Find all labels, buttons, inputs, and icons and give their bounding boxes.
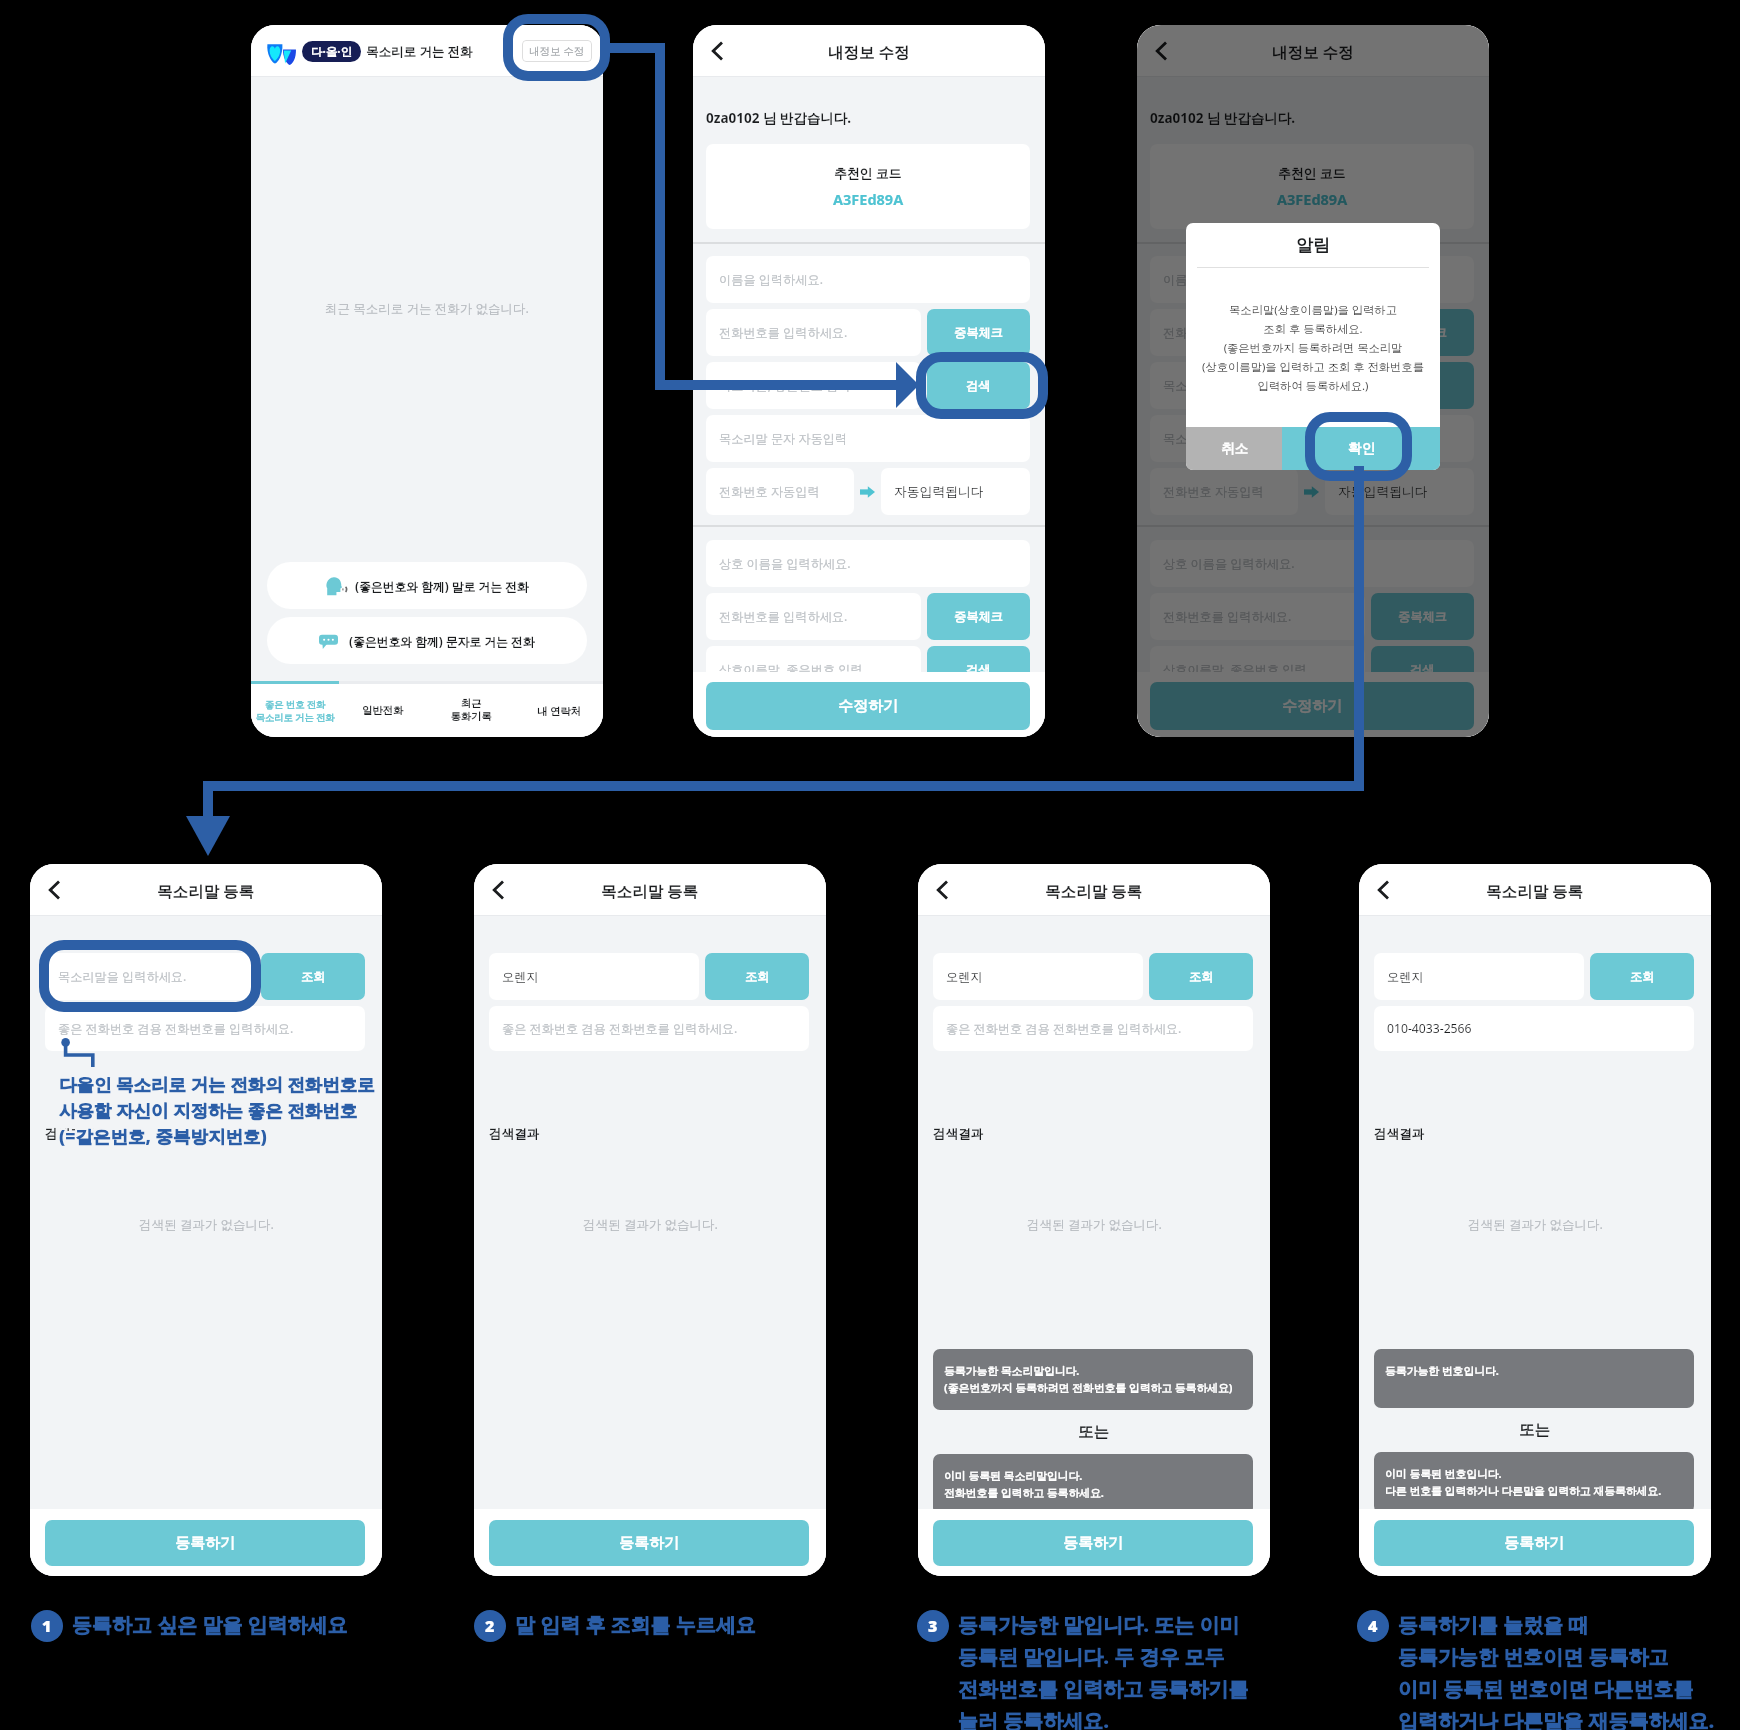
button[interactable]: 등록하기 — [489, 1520, 809, 1566]
button[interactable]: 내 연락처 — [515, 684, 603, 737]
staticText: 말 입력 후 조회를 누르세요 — [515, 1611, 756, 1638]
button[interactable]: 중복체크 — [1371, 309, 1474, 356]
button[interactable]: 2 — [474, 1610, 506, 1642]
staticText: 다·올·인 — [311, 44, 352, 60]
button[interactable]: 수정하기 — [1150, 682, 1474, 730]
button[interactable]: 3 — [917, 1610, 949, 1642]
staticText: 오렌지 — [1387, 969, 1424, 984]
staticText: 목소리말 문자 자동입력 — [719, 430, 848, 447]
button[interactable]: 중복체크 — [927, 593, 1030, 640]
button[interactable]: 조회 — [1149, 953, 1253, 1000]
button[interactable]: Back — [1367, 873, 1401, 907]
staticText: 다올인 목소리로 거는 전화의 전화번호로 사용할 자신이 지정하는 좋은 전화… — [57, 1073, 397, 1149]
button[interactable]: 오렌지 — [933, 953, 1143, 1000]
button[interactable]: 목소리말을 입력하세요. — [45, 953, 255, 1000]
staticText: 조회 — [1189, 969, 1214, 984]
button[interactable]: 상호 이름을 입력하세요. — [706, 540, 1030, 587]
button[interactable]: (좋은번호와 함께) 문자로 거는 전화 — [267, 617, 587, 664]
staticText: 알림 — [1296, 235, 1330, 256]
button[interactable]: 좋은 전화번호 겸용 전화번호를 입력하세요. — [45, 1006, 365, 1051]
button[interactable]: 확인 — [1282, 427, 1440, 470]
button[interactable]: 등록하기 — [45, 1520, 365, 1566]
staticText: 이미 등록된 번호입니다. 다른 번호를 입력하거나 다른말을 입력하고 재등록… — [1385, 1466, 1662, 1499]
button[interactable]: 취소 — [1186, 427, 1282, 470]
button[interactable]: 4 — [1357, 1610, 1389, 1642]
staticText: 확인 — [1348, 440, 1375, 457]
button[interactable]: 오렌지 — [489, 953, 699, 1000]
button[interactable]: 최근 통화기록 — [427, 684, 515, 737]
button[interactable]: 상호이름말, 좋은번호 입력 — [706, 646, 921, 693]
button[interactable]: Back — [1145, 34, 1179, 68]
staticText: 중복체크 — [954, 609, 1003, 624]
staticText: 내정보 수정 — [1272, 41, 1354, 62]
staticText: 다올인 목소리로 거는 전화의 전화번호로 사용할 자신이 지정하는 좋은 전화… — [59, 1070, 399, 1146]
button[interactable]: 전화번호 자동입력 — [706, 468, 854, 515]
button[interactable]: 검색 — [1371, 362, 1474, 409]
staticText: 최근 목소리로 거는 전화가 없습니다. — [325, 300, 529, 317]
button[interactable]: 검색 — [1371, 646, 1474, 693]
staticText: 검색된 결과가 없습니다. — [583, 1216, 718, 1233]
button[interactable]: 일반전화 — [339, 684, 427, 737]
button[interactable]: 오렌지 — [1374, 953, 1584, 1000]
button[interactable]: 목소리말, 좋은번호 입력 — [706, 362, 921, 409]
button[interactable]: Back — [701, 34, 735, 68]
staticText: 상호 이름을 입력하세요. — [1163, 555, 1295, 572]
button[interactable]: 상호 이름을 입력하세요. — [1150, 540, 1474, 587]
button[interactable]: 상호이름말, 좋은번호 입력 — [1150, 646, 1365, 693]
staticText: 취소 — [1221, 440, 1248, 457]
staticText: 전화번호를 입력하세요. — [719, 608, 848, 625]
button[interactable]: 이름을 입력하세요. — [1150, 256, 1474, 303]
staticText: 오렌지 — [946, 969, 983, 984]
button[interactable]: Back — [926, 873, 960, 907]
staticText: 목소리말 등록 — [1486, 880, 1584, 901]
button[interactable]: 전화번호를 입력하세요. — [1150, 309, 1365, 356]
button[interactable]: 목소리말 문자 자동입력 — [706, 415, 1030, 462]
staticText: 수정하기 — [838, 697, 898, 716]
staticText: 전화번호를 입력하세요. — [1163, 608, 1292, 625]
staticText: 등록하고 싶은 말을 입력하세요 — [72, 1611, 348, 1638]
button[interactable]: 좋은 번호 전화 목소리로 거는 전화 — [251, 684, 339, 737]
button[interactable]: 조회 — [261, 953, 365, 1000]
staticText: 검색 — [1410, 662, 1435, 677]
staticText: 이름을 입력하세요. — [1163, 271, 1267, 288]
button[interactable]: 전화번호를 입력하세요. — [706, 593, 921, 640]
button[interactable]: 010-4033-2566 — [1374, 1006, 1694, 1051]
staticText: 다올인 목소리로 거는 전화의 전화번호로 사용할 자신이 지정하는 좋은 전화… — [61, 1072, 401, 1148]
button[interactable]: 전화번호를 입력하세요. — [1150, 593, 1365, 640]
button[interactable]: 중복체크 — [927, 309, 1030, 356]
button[interactable]: 전화번호 자동입력 — [1150, 468, 1298, 515]
button[interactable]: 좋은 전화번호 겸용 전화번호를 입력하세요. — [489, 1006, 809, 1051]
staticText: 검색된 결과가 없습니다. — [1027, 1216, 1162, 1233]
button[interactable]: 검색 — [927, 362, 1030, 409]
button[interactable]: Back — [482, 873, 516, 907]
staticText: 이미 등록된 목소리말입니다. 전화번호를 입력하고 등록하세요. — [944, 1468, 1104, 1501]
button[interactable]: 목소리말 문자 자동입력 — [1150, 415, 1474, 462]
button[interactable]: 자동입력됩니다 — [1325, 468, 1474, 515]
staticText: 또는 — [1078, 1422, 1109, 1442]
staticText: 전화번호를 입력하세요. — [719, 324, 848, 341]
button[interactable]: 중복체크 — [1371, 593, 1474, 640]
button[interactable]: 조회 — [705, 953, 809, 1000]
button[interactable]: (좋은번호와 함께) 말로 거는 전화 — [267, 562, 587, 609]
staticText: 다올인 목소리로 거는 전화의 전화번호로 사용할 자신이 지정하는 좋은 전화… — [61, 1071, 401, 1147]
staticText: 상호 이름을 입력하세요. — [719, 555, 851, 572]
button[interactable]: 자동입력됩니다 — [881, 468, 1030, 515]
staticText: 검색결과 — [45, 1126, 95, 1142]
staticText: 조회 — [1630, 969, 1655, 984]
button[interactable]: 목소리말, 좋은번호 입력 — [1150, 362, 1365, 409]
button[interactable]: 등록하기 — [933, 1520, 1253, 1566]
button[interactable]: 검색 — [927, 646, 1030, 693]
staticText: 다올인 목소리로 거는 전화의 전화번호로 사용할 자신이 지정하는 좋은 전화… — [57, 1071, 397, 1147]
staticText: 추천인 코드 — [834, 164, 902, 181]
button[interactable]: 이름을 입력하세요. — [706, 256, 1030, 303]
button[interactable]: 좋은 전화번호 겸용 전화번호를 입력하세요. — [933, 1006, 1253, 1051]
staticText: 다올인 목소리로 거는 전화의 전화번호로 사용할 자신이 지정하는 좋은 전화… — [60, 1071, 400, 1147]
button[interactable]: 내정보 수정 — [522, 40, 592, 62]
button[interactable]: 전화번호를 입력하세요. — [706, 309, 921, 356]
button[interactable]: 등록하기 — [1374, 1520, 1694, 1566]
staticText: 중복체크 — [1398, 609, 1447, 624]
button[interactable]: 1 — [31, 1610, 63, 1642]
button[interactable]: 수정하기 — [706, 682, 1030, 730]
button[interactable]: 조회 — [1590, 953, 1694, 1000]
button[interactable]: Back — [38, 873, 72, 907]
